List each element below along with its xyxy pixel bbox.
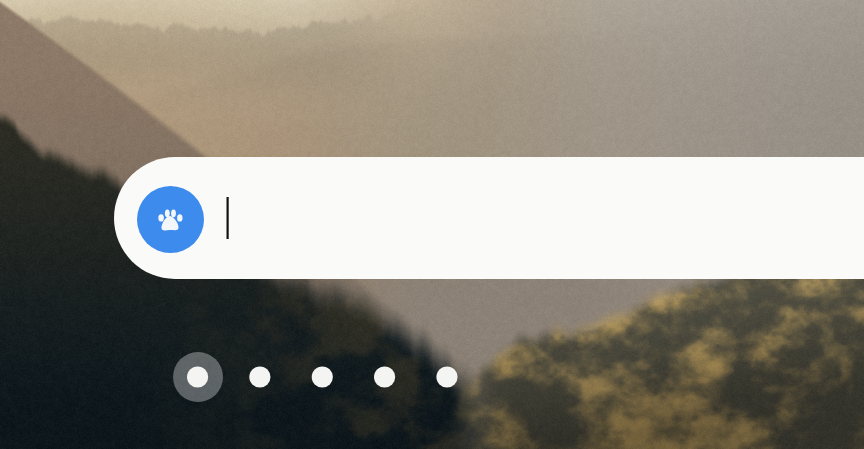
button[interactable]: Page 4 [360,352,410,402]
button[interactable] [114,157,864,279]
button[interactable]: Page 1 [173,352,223,402]
button[interactable]: Baidu search [137,186,204,253]
button[interactable]: Page 3 [297,352,347,402]
button[interactable]: Page 5 [422,352,472,402]
button[interactable]: Page 2 [235,352,285,402]
